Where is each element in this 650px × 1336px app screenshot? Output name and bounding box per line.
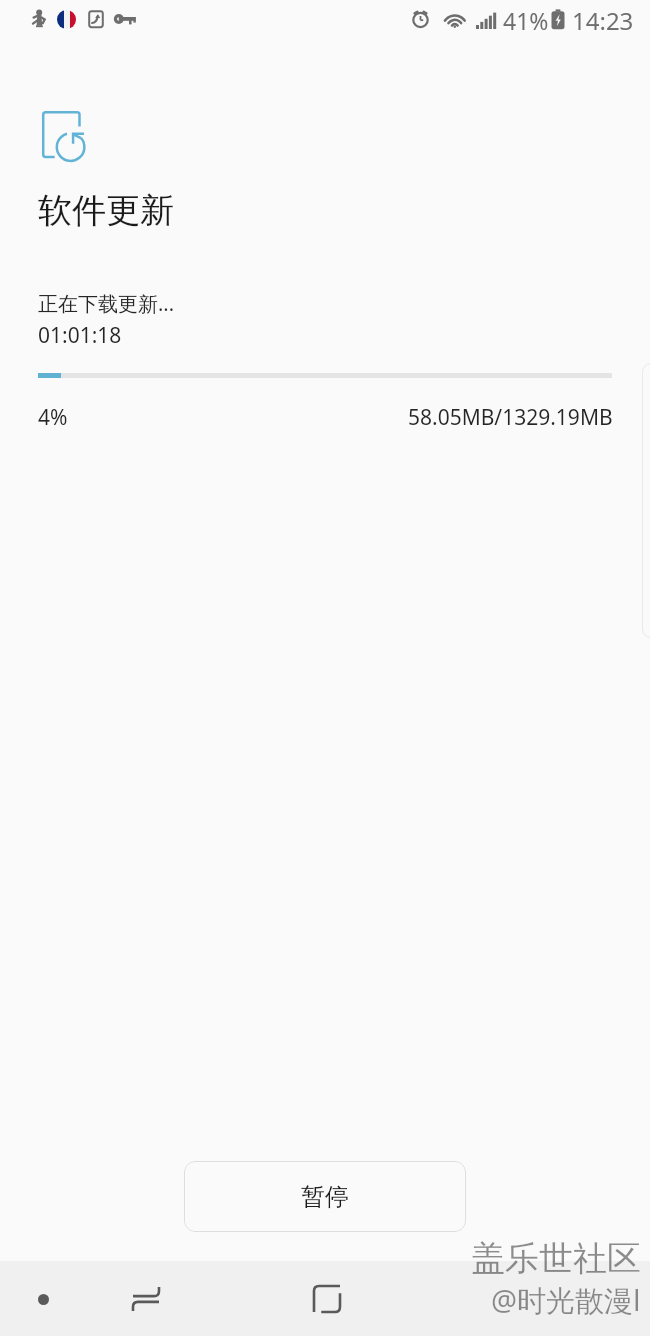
staticText: 软件更新 xyxy=(38,189,174,232)
button[interactable]: 暂停 xyxy=(184,1161,466,1232)
staticText: 正在下载更新... xyxy=(38,290,175,317)
staticText: 58.05MB/1329.19MB xyxy=(408,403,613,432)
staticText: 盖乐世社区 xyxy=(471,1237,641,1280)
staticText: @时光散漫l xyxy=(491,1280,641,1320)
button[interactable]: Back xyxy=(302,1274,352,1324)
staticText: 暂停 xyxy=(301,1182,349,1212)
button[interactable]: Multi window xyxy=(121,1274,171,1324)
staticText: 01:01:18 xyxy=(38,321,122,350)
button[interactable]: Recents xyxy=(18,1274,68,1324)
staticText: 4% xyxy=(38,403,68,432)
staticText: 41% xyxy=(503,5,549,36)
staticText: 14:23 xyxy=(572,4,634,37)
